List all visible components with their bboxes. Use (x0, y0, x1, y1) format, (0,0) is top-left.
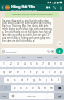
button[interactable]: Scroll to bottom (57, 41, 62, 46)
button[interactable]: Hằng Hải Yến (11, 4, 44, 11)
button[interactable]: Em (16, 55, 32, 60)
button[interactable]: l (55, 77, 61, 83)
button[interactable]: 1 (0, 61, 7, 67)
staticText: j (46, 78, 47, 82)
button[interactable]: Video call (44, 4, 51, 11)
button[interactable]: t (28, 69, 34, 75)
staticText: u (42, 70, 44, 74)
button[interactable]: Back (0, 4, 5, 11)
staticText: p (60, 70, 62, 74)
button[interactable]: Dạ (0, 55, 16, 60)
button[interactable]: y (34, 69, 40, 75)
button[interactable]: Vâng (32, 55, 48, 60)
button[interactable]: 9 (52, 61, 58, 67)
staticText: z (14, 86, 16, 90)
button[interactable]: Voice call (51, 4, 58, 11)
staticText: Alo (54, 56, 58, 59)
button[interactable]: Shift (0, 85, 11, 91)
staticText: Vâng (37, 56, 43, 59)
staticText: w (9, 70, 12, 74)
button[interactable]: 5 (28, 61, 34, 67)
button[interactable]: 2 (7, 61, 14, 67)
staticText: Dạ (7, 56, 10, 59)
button[interactable]: 6 (34, 61, 40, 67)
staticText: tap here for contact info (11, 9, 38, 11)
button[interactable]: More options (58, 4, 64, 11)
button[interactable]: 7 (40, 61, 46, 67)
staticText: Hằng Hải Yến (11, 4, 35, 9)
staticText: Messages and calls are end-to-end encryp… (12, 13, 53, 16)
staticText: 6 (36, 62, 38, 66)
button[interactable]: k (49, 77, 55, 83)
button[interactable]: j (43, 77, 49, 83)
button[interactable]: Profile photo (5, 5, 10, 10)
button[interactable]: Tiếng Việt (16, 93, 47, 99)
staticText: r (24, 70, 26, 74)
button[interactable]: Enter (54, 93, 64, 99)
button[interactable]: 0 (58, 61, 64, 67)
staticText: f (27, 78, 29, 82)
button[interactable]: a (4, 77, 11, 83)
button[interactable]: v (30, 85, 36, 91)
button[interactable]: x (18, 85, 24, 91)
button[interactable]: 4 (21, 61, 28, 67)
button[interactable]: 8 (46, 61, 52, 67)
staticText: q (3, 70, 5, 74)
button[interactable]: i (46, 69, 52, 75)
staticText: 5 (30, 62, 32, 66)
button[interactable]: c (24, 85, 30, 91)
staticText: a (7, 78, 9, 82)
staticText: 8 (48, 62, 50, 66)
button[interactable]: z (11, 85, 18, 91)
staticText: e (17, 70, 19, 74)
button[interactable]: u (40, 69, 46, 75)
staticText: k (51, 78, 53, 82)
button[interactable]: q (0, 69, 7, 75)
button[interactable]: Attach (47, 50, 50, 53)
staticText: Em (22, 56, 26, 59)
button[interactable]: Message (1, 48, 55, 54)
staticText: c (26, 86, 28, 90)
staticText: 2 (10, 62, 12, 66)
button[interactable]: Backspace (54, 85, 64, 91)
button[interactable]: ?123 (0, 93, 9, 99)
staticText: n (44, 86, 46, 90)
staticText: h (39, 78, 41, 82)
staticText: o (54, 70, 56, 74)
button[interactable]: g (31, 77, 37, 83)
staticText: v (32, 86, 34, 90)
staticText: 1 (3, 62, 5, 66)
staticText: y (36, 70, 38, 74)
staticText: b (38, 86, 40, 90)
button[interactable]: r (21, 69, 28, 75)
button[interactable]: Voice message (56, 48, 63, 54)
button[interactable]: h (37, 77, 43, 83)
button[interactable]: m (48, 85, 54, 91)
staticText: g (33, 78, 35, 82)
button[interactable]: e (14, 69, 21, 75)
button[interactable]: b (36, 85, 42, 91)
staticText: d (21, 78, 23, 82)
staticText: Tiếng Việt (27, 95, 36, 97)
button[interactable]: . (47, 93, 54, 99)
staticText: ?123 (2, 95, 7, 98)
button[interactable]: 3 (14, 61, 21, 67)
button[interactable]: Camera (51, 50, 54, 53)
staticText: s (14, 78, 16, 82)
button[interactable]: n (42, 85, 48, 91)
staticText: 9 (54, 62, 56, 66)
button[interactable]: Emoji (9, 93, 16, 99)
button[interactable]: o (52, 69, 58, 75)
staticText: 0 (60, 62, 62, 66)
staticText: 3 (17, 62, 19, 66)
button[interactable]: d (18, 77, 25, 83)
button[interactable]: f (25, 77, 31, 83)
button[interactable]: p (58, 69, 64, 75)
button[interactable]: Alo (48, 55, 64, 60)
button[interactable]: Dạ em chào anh ạ, em là sinh viên năm cu… (1, 18, 53, 44)
button[interactable]: s (11, 77, 18, 83)
staticText: x (20, 86, 22, 90)
staticText: t (30, 70, 32, 74)
button[interactable]: w (7, 69, 14, 75)
staticText: 4 (24, 62, 26, 66)
